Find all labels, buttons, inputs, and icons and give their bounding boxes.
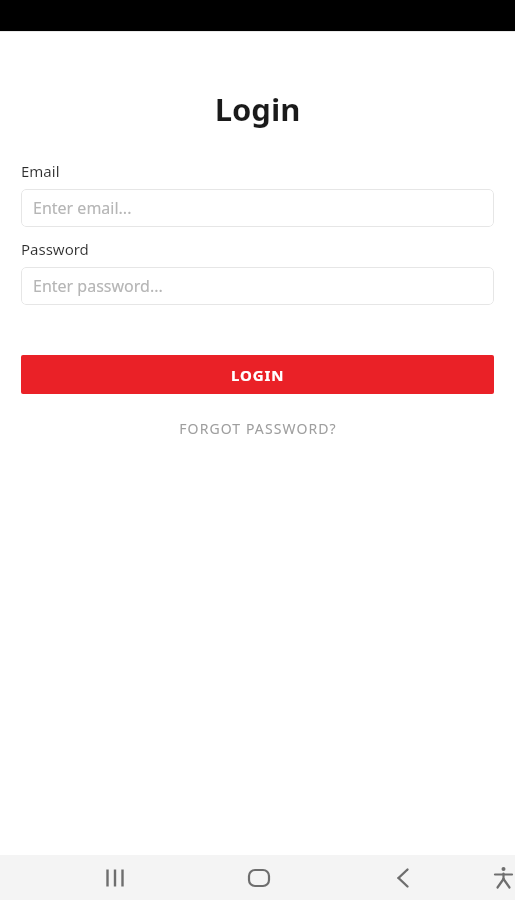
- staticText: Enter password...: [33, 275, 163, 297]
- staticText: FORGOT PASSWORD?: [179, 419, 337, 438]
- button[interactable]: Recent apps: [86, 855, 144, 900]
- button[interactable]: Enter email...: [21, 189, 494, 227]
- button[interactable]: FORGOT PASSWORD?: [0, 412, 515, 444]
- staticText: LOGIN: [231, 365, 285, 385]
- button[interactable]: Home: [230, 855, 288, 900]
- button[interactable]: Back: [374, 855, 432, 900]
- button[interactable]: Accessibility: [492, 855, 515, 900]
- staticText: Password: [21, 239, 89, 259]
- button[interactable]: LOGIN: [21, 355, 494, 394]
- staticText: Enter email...: [33, 197, 132, 219]
- staticText: Login: [0, 88, 515, 130]
- staticText: Email: [21, 161, 60, 181]
- button[interactable]: Enter password...: [21, 267, 494, 305]
